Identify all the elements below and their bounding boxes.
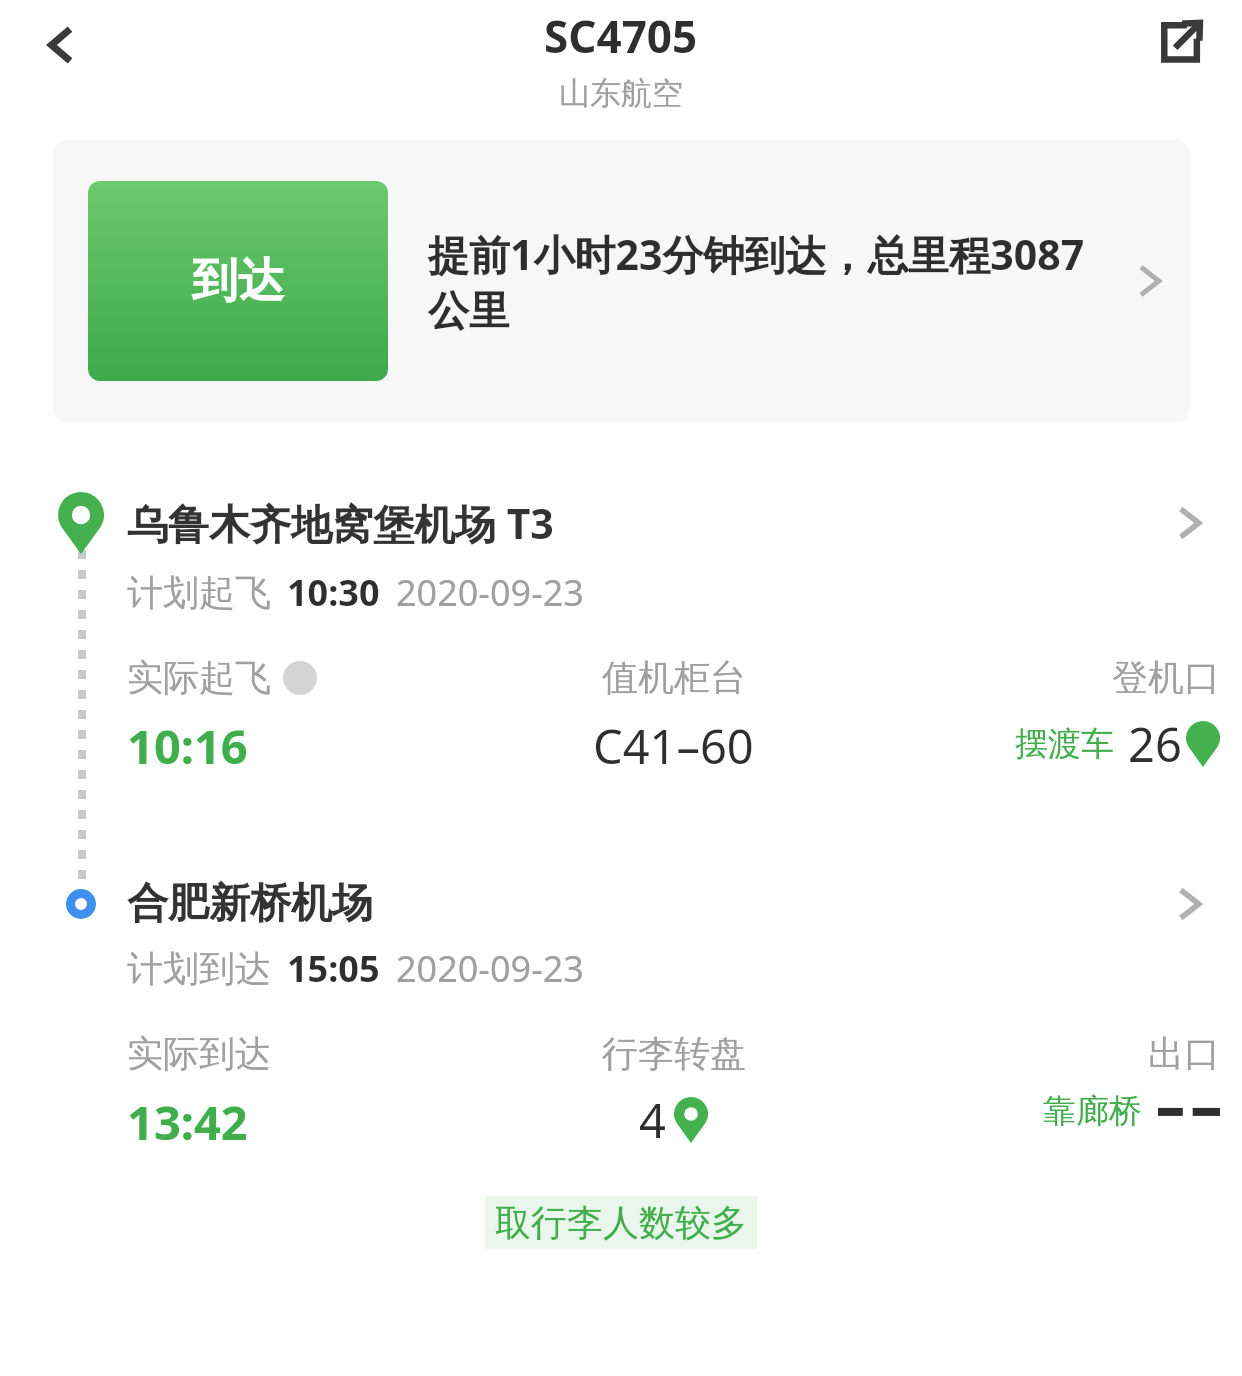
staticText: 实际起飞 bbox=[127, 655, 271, 700]
staticText: 26 bbox=[1128, 712, 1182, 776]
staticText: 到达 bbox=[192, 252, 284, 310]
staticText: 值机柜台 bbox=[602, 655, 746, 700]
button[interactable]: 到达 bbox=[53, 140, 1190, 422]
staticText: 计划到达 bbox=[127, 946, 271, 991]
button[interactable]: Back bbox=[18, 2, 104, 88]
staticText: 2020-09-23 bbox=[396, 944, 584, 993]
button[interactable]: Share bbox=[1138, 0, 1224, 84]
staticText: 山东航空 bbox=[559, 74, 683, 113]
staticText: 4 bbox=[639, 1088, 666, 1152]
staticText: 登机口 bbox=[1112, 655, 1220, 700]
staticText: 13:42 bbox=[127, 1090, 248, 1154]
staticText: SC4705 bbox=[544, 6, 698, 66]
staticText: C41–60 bbox=[593, 714, 754, 778]
button[interactable]: 乌鲁木齐地窝堡机场 T3 bbox=[0, 492, 1242, 554]
button[interactable]: 取行李人数较多 bbox=[495, 1200, 747, 1245]
staticText: 摆渡车 bbox=[1015, 723, 1114, 765]
staticText: 取行李人数较多 bbox=[495, 1200, 747, 1245]
staticText: 合肥新桥机场 bbox=[127, 878, 1168, 930]
staticText: 10:30 bbox=[287, 568, 380, 617]
staticText: 实际到达 bbox=[127, 1031, 271, 1076]
button[interactable]: 合肥新桥机场 bbox=[0, 878, 1242, 930]
staticText: 计划起飞 bbox=[127, 570, 271, 615]
staticText: 提前1小时23分钟到达，总里程3087公里 bbox=[428, 226, 1118, 337]
staticText: 15:05 bbox=[287, 944, 380, 993]
staticText: 10:16 bbox=[127, 714, 248, 778]
staticText: 行李转盘 bbox=[602, 1031, 746, 1076]
staticText: 出口 bbox=[1148, 1031, 1220, 1076]
staticText: 靠廊桥 bbox=[1043, 1090, 1142, 1132]
staticText: 乌鲁木齐地窝堡机场 T3 bbox=[127, 495, 1168, 551]
staticText: 2020-09-23 bbox=[396, 568, 584, 617]
